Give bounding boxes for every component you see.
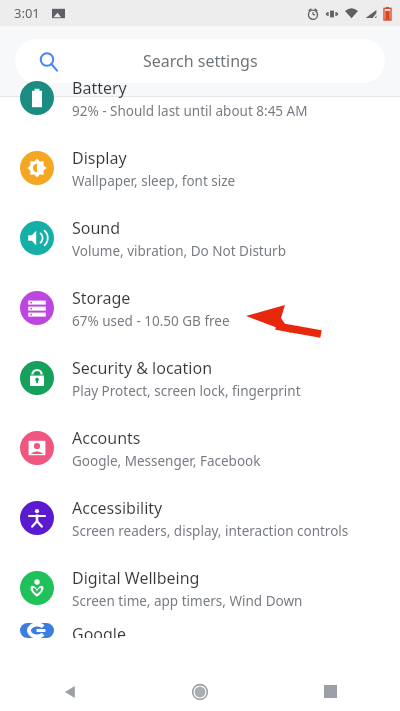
button[interactable]: Back [48,672,92,711]
staticText: Security & location [72,357,213,379]
staticText: Wallpaper, sleep, font size [72,172,236,190]
staticText: Volume, vibration, Do Not Disturb [72,242,286,260]
staticText: Search settings [143,50,258,72]
button[interactable]: Security & location [0,343,400,413]
staticText: Screen readers, display, interaction con… [72,522,349,540]
button[interactable]: Digital Wellbeing [0,553,400,623]
staticText: Display [72,147,127,169]
staticText: Play Protect, screen lock, fingerprint [72,382,301,400]
staticText: Accounts [72,427,141,449]
button[interactable]: Search settings [15,39,385,83]
button[interactable]: Google [0,623,400,638]
staticText: Battery [72,77,127,99]
staticText: Screen time, app timers, Wind Down [72,592,303,610]
button[interactable]: Sound [0,203,400,273]
staticText: Google, Messenger, Facebook [72,452,261,470]
staticText: Accessibility [72,497,163,519]
button[interactable]: Display [0,133,400,203]
staticText: 67% used - 10.50 GB free [72,312,230,330]
staticText: Google [72,623,127,638]
button[interactable]: Recent apps [308,672,352,711]
staticText: 3:01 [14,4,40,22]
staticText: 92% - Should last until about 8:45 AM [72,102,308,120]
staticText: Digital Wellbeing [72,567,200,589]
staticText: Storage [72,287,131,309]
button[interactable]: Home [178,672,222,711]
button[interactable]: Accessibility [0,483,400,553]
button[interactable]: Accounts [0,413,400,483]
staticText: Sound [72,217,121,239]
button[interactable]: Storage [0,273,400,343]
button[interactable]: Battery [0,63,400,133]
